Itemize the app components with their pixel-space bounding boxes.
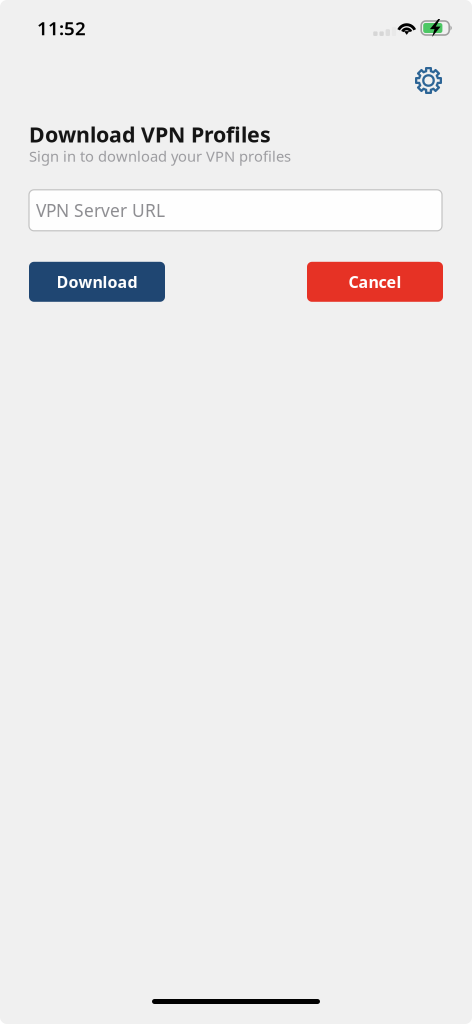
button[interactable]: VPN Server URL [29,190,442,231]
button[interactable]: Download [29,262,165,302]
staticText: Sign in to download your VPN profiles [29,146,291,166]
staticText: Cancel [348,271,401,292]
staticText: VPN Server URL [36,199,165,222]
staticText: Download [56,271,137,292]
button[interactable]: Cancel [307,262,443,302]
button[interactable]: Settings [405,60,452,101]
staticText: Download VPN Profiles [29,120,271,148]
staticText: 11:52 [37,16,86,40]
